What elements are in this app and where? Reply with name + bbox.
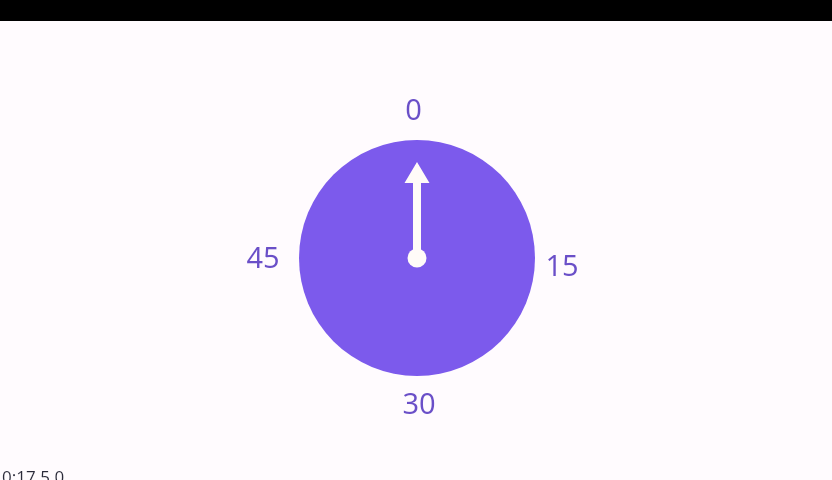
staticText: 0 bbox=[405, 89, 422, 128]
staticText: 30 bbox=[402, 383, 436, 422]
staticText: 45 bbox=[246, 237, 280, 276]
staticText: 0:17.5 0 bbox=[2, 465, 65, 480]
staticText: 15 bbox=[545, 245, 579, 284]
button[interactable]: Timer dial, needle at 0 seconds bbox=[299, 140, 535, 376]
